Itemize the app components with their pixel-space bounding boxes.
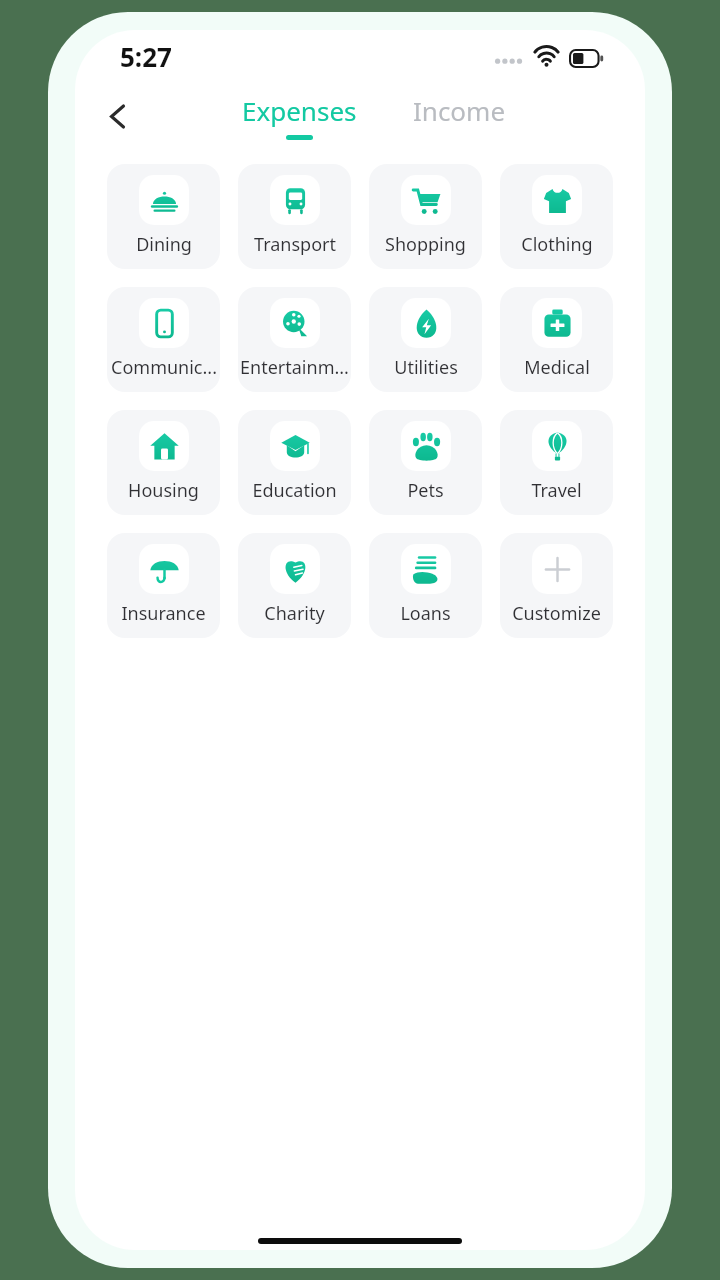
staticText: Education (252, 478, 337, 503)
button[interactable]: Charity (238, 533, 351, 638)
staticText: Insurance (121, 601, 206, 626)
button[interactable]: Income (403, 90, 516, 143)
button[interactable]: Utilities (369, 287, 482, 392)
button[interactable]: Communic... (107, 287, 220, 392)
button[interactable]: Loans (369, 533, 482, 638)
staticText: Charity (264, 601, 325, 626)
staticText: Utilities (394, 355, 458, 380)
staticText: Dining (136, 232, 192, 257)
button[interactable]: Shopping (369, 164, 482, 269)
staticText: Housing (128, 478, 199, 503)
staticText: Income (413, 93, 506, 128)
button[interactable]: Back (91, 90, 143, 142)
button[interactable]: Insurance (107, 533, 220, 638)
staticText: Loans (400, 601, 451, 626)
staticText: Communic... (111, 355, 217, 380)
staticText: Pets (407, 478, 444, 503)
button[interactable]: Clothing (500, 164, 613, 269)
button[interactable]: Transport (238, 164, 351, 269)
button[interactable]: Expenses (232, 90, 367, 143)
button[interactable]: Housing (107, 410, 220, 515)
button[interactable]: Pets (369, 410, 482, 515)
button[interactable]: Education (238, 410, 351, 515)
button[interactable]: Travel (500, 410, 613, 515)
staticText: Expenses (242, 93, 357, 128)
button[interactable]: Customize (500, 533, 613, 638)
staticText: Medical (524, 355, 590, 380)
staticText: Travel (531, 478, 582, 503)
button[interactable]: Entertainm... (238, 287, 351, 392)
button[interactable]: Dining (107, 164, 220, 269)
staticText: Clothing (521, 232, 593, 257)
staticText: Transport (254, 232, 336, 257)
staticText: Customize (512, 601, 601, 626)
staticText: Entertainm... (240, 355, 349, 380)
staticText: Shopping (385, 232, 466, 257)
button[interactable]: Medical (500, 287, 613, 392)
staticText: 5:27 (120, 39, 172, 74)
